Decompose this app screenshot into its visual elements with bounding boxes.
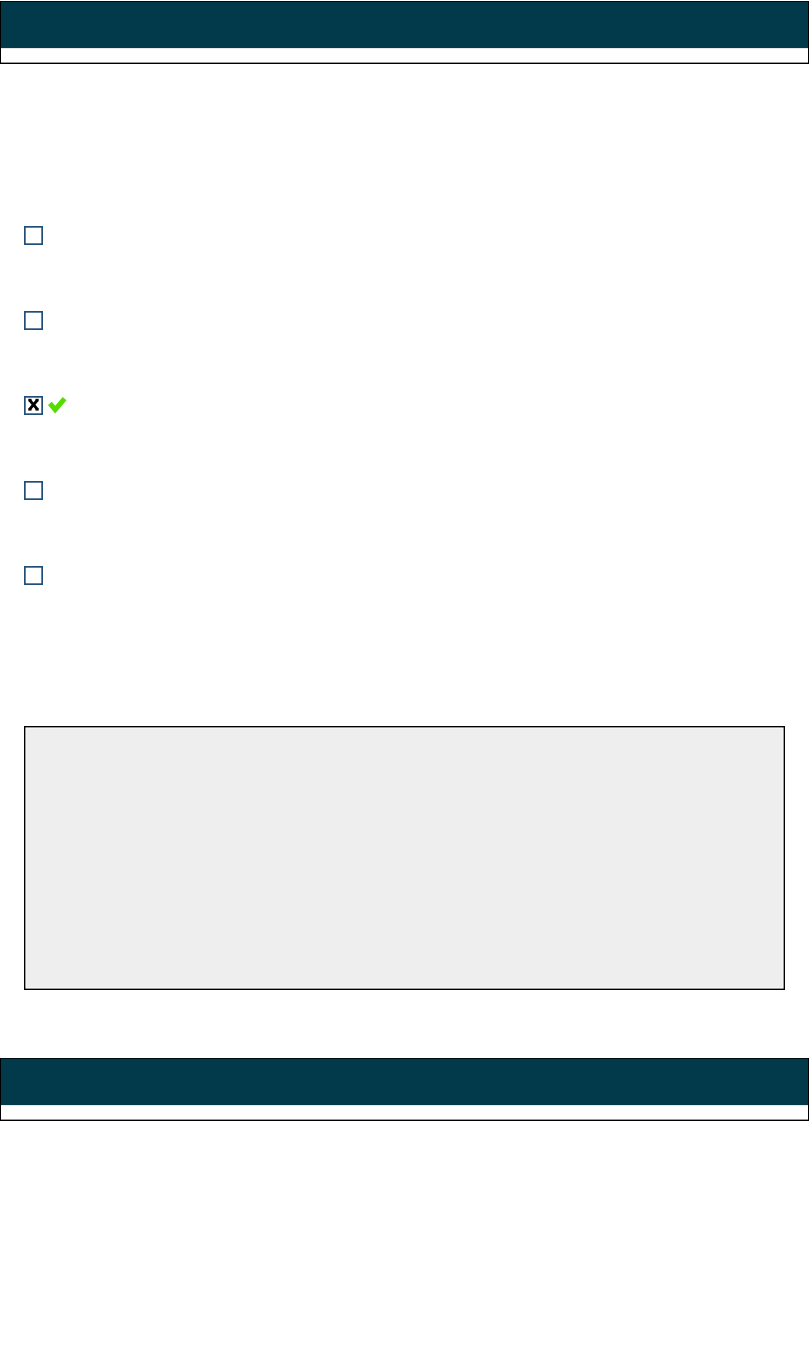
button[interactable]: Bottom navigation bar <box>0 1058 809 1122</box>
button[interactable]: Top app bar <box>0 1 809 65</box>
button[interactable]: Comments text area <box>24 726 785 990</box>
button[interactable]: Answer option <box>24 226 43 245</box>
button[interactable]: Answer option <box>24 481 43 500</box>
button[interactable]: Answer option <box>24 311 43 330</box>
button[interactable]: Selected answer, checked <box>24 396 66 415</box>
button[interactable]: Answer option <box>24 566 43 585</box>
